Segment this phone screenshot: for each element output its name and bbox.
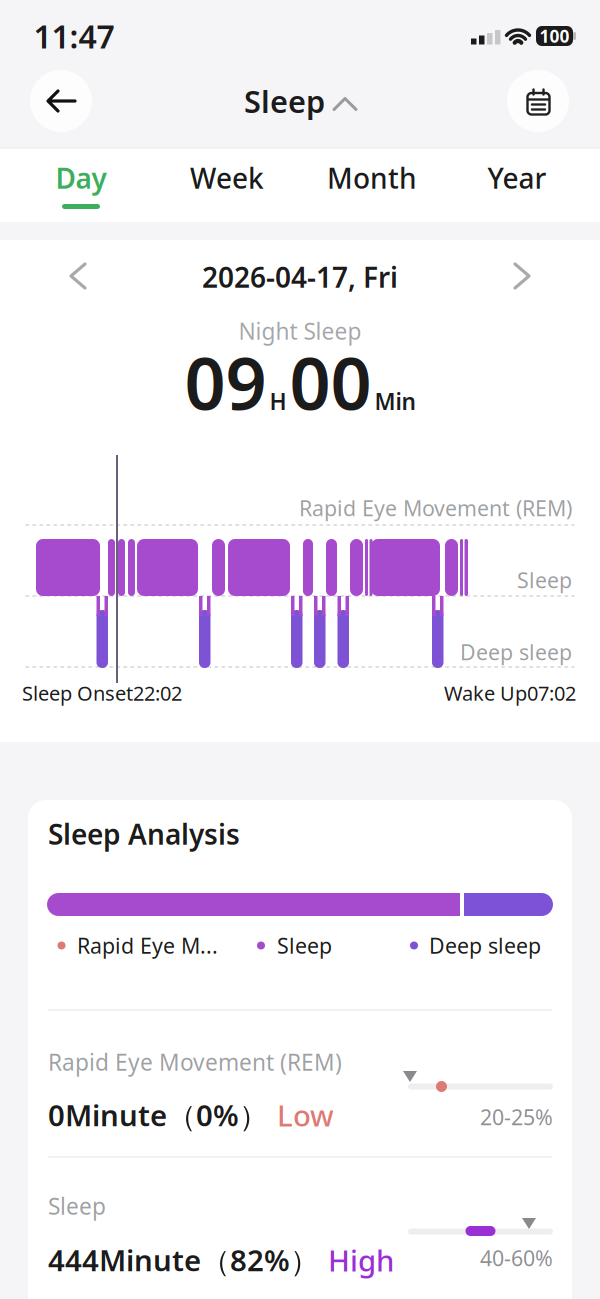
staticText: Min: [374, 386, 415, 416]
staticText: Deep sleep: [460, 638, 572, 666]
button[interactable]: Month: [317, 148, 427, 222]
staticText: Year: [487, 159, 546, 197]
staticText: Deep sleep: [429, 931, 541, 960]
staticText: 2026-04-17, Fri: [202, 258, 398, 296]
button[interactable]: [507, 70, 569, 132]
button[interactable]: Week: [172, 148, 282, 222]
staticText: Month: [327, 159, 417, 197]
staticText: 444Minute（82%）: [48, 1240, 319, 1279]
staticText: 20-25%: [480, 1103, 553, 1131]
staticText: Rapid Eye M...: [77, 931, 218, 960]
staticText: 100: [539, 24, 569, 47]
staticText: H: [269, 386, 286, 416]
staticText: Sleep: [517, 566, 572, 594]
staticText: 00: [289, 334, 371, 430]
staticText: Sleep: [277, 931, 332, 960]
button[interactable]: [59, 256, 99, 296]
staticText: Sleep: [244, 81, 325, 121]
button[interactable]: Year: [462, 148, 572, 222]
staticText: Sleep Onset22:02: [22, 680, 182, 706]
button[interactable]: [501, 256, 541, 296]
staticText: Rapid Eye Movement (REM): [48, 1047, 342, 1077]
staticText: 0Minute（0%）: [48, 1095, 268, 1134]
staticText: Day: [55, 159, 106, 197]
staticText: Night Sleep: [238, 316, 361, 346]
staticText: Low: [277, 1095, 334, 1134]
staticText: 40-60%: [480, 1244, 553, 1272]
button[interactable]: Sleep: [244, 81, 356, 121]
staticText: Rapid Eye Movement (REM): [299, 494, 572, 522]
staticText: Wake Up07:02: [444, 680, 576, 706]
staticText: 09: [184, 334, 266, 430]
staticText: 11:47: [33, 15, 114, 57]
staticText: Sleep Analysis: [48, 815, 240, 853]
button[interactable]: [30, 70, 92, 132]
button[interactable]: Day: [26, 148, 136, 222]
staticText: High: [328, 1240, 394, 1279]
staticText: Week: [190, 159, 264, 197]
staticText: Sleep: [48, 1191, 106, 1221]
